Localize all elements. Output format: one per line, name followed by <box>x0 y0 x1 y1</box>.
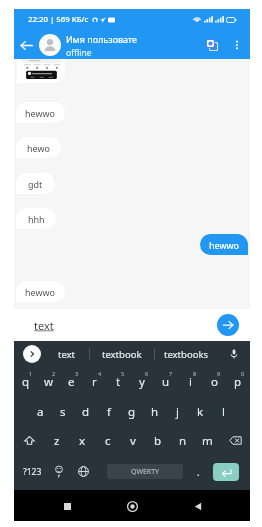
staticText: z <box>54 433 60 449</box>
button[interactable]: . <box>183 455 213 488</box>
staticText: ?123 <box>23 466 42 478</box>
button[interactable]: i <box>178 367 202 397</box>
button[interactable]: y <box>130 367 154 397</box>
button[interactable]: hewwo <box>16 281 65 302</box>
staticText: textbooks <box>164 348 209 361</box>
staticText: 2 <box>52 370 56 377</box>
button[interactable]: t <box>106 367 130 397</box>
button[interactable]: Back <box>185 493 211 519</box>
button[interactable]: Expand toolbar <box>23 345 41 363</box>
button[interactable]: x <box>70 426 95 455</box>
button[interactable]: q <box>14 367 37 397</box>
button[interactable]: hewo <box>16 137 61 158</box>
staticText: l <box>222 404 225 420</box>
button[interactable]: Translate <box>201 34 223 56</box>
staticText: text <box>34 318 54 333</box>
button[interactable]: r <box>83 367 106 397</box>
button[interactable]: o <box>202 367 226 397</box>
staticText: k <box>197 404 204 420</box>
staticText: a <box>37 404 44 420</box>
button[interactable]: u <box>154 367 178 397</box>
button[interactable]: Backspace <box>220 426 250 455</box>
staticText: f <box>107 404 111 420</box>
button[interactable]: textbook <box>90 341 154 367</box>
button[interactable]: hewwo <box>16 102 65 123</box>
button[interactable]: l <box>212 397 235 426</box>
staticText: v <box>130 433 136 449</box>
staticText: hhh <box>28 213 45 225</box>
button[interactable]: Emoji <box>50 455 68 488</box>
staticText: q <box>22 374 30 390</box>
button[interactable]: p <box>226 367 250 397</box>
staticText: 7 <box>169 370 173 377</box>
button[interactable]: j <box>166 397 189 426</box>
button[interactable]: f <box>97 397 120 426</box>
button[interactable]: Back <box>16 35 36 55</box>
staticText: m <box>202 433 213 449</box>
button[interactable]: z <box>44 426 70 455</box>
button[interactable]: gdt <box>16 173 55 194</box>
button[interactable]: hewwo <box>200 234 248 255</box>
staticText: textbook <box>102 348 142 361</box>
staticText: y <box>139 374 145 390</box>
button[interactable]: ?123 <box>14 455 50 488</box>
staticText: e <box>68 374 75 390</box>
button[interactable]: textbooks <box>155 341 218 367</box>
staticText: hewwo <box>209 239 240 251</box>
staticText: j <box>176 404 179 420</box>
button[interactable]: Change language <box>68 455 98 488</box>
button[interactable]: s <box>51 397 74 426</box>
button[interactable]: Enter <box>213 463 239 481</box>
button[interactable]: n <box>170 426 195 455</box>
staticText: p <box>234 374 242 390</box>
staticText: offline <box>66 47 92 59</box>
staticText: text <box>58 348 76 361</box>
staticText: 8 <box>193 370 197 377</box>
staticText: r <box>92 374 97 390</box>
button[interactable]: text <box>44 341 89 367</box>
staticText: 6 <box>145 370 149 377</box>
staticText: h <box>151 404 159 420</box>
staticText: d <box>82 404 90 420</box>
staticText: g <box>128 404 136 420</box>
staticText: 5 <box>121 370 125 377</box>
button[interactable]: More options <box>227 35 247 55</box>
staticText: 3 <box>75 370 79 377</box>
button[interactable]: Send <box>217 314 239 336</box>
staticText: gdt <box>28 178 43 190</box>
staticText: 22:20 | 569 КБ/с <box>28 14 89 25</box>
button[interactable]: Voice input <box>218 341 250 367</box>
staticText: QWERTY <box>131 467 160 477</box>
button[interactable]: v <box>120 426 145 455</box>
staticText: 1 <box>29 370 33 377</box>
button[interactable]: a <box>29 397 51 426</box>
button[interactable] <box>17 59 65 83</box>
staticText: hewwo <box>25 107 56 119</box>
staticText: s <box>60 404 66 420</box>
button[interactable]: Recents <box>54 493 80 519</box>
button[interactable]: e <box>60 367 83 397</box>
button[interactable]: k <box>189 397 212 426</box>
button[interactable]: d <box>74 397 97 426</box>
button[interactable]: hhh <box>16 208 56 229</box>
button[interactable]: Shift <box>14 426 44 455</box>
staticText: n <box>179 433 187 449</box>
button[interactable]: b <box>145 426 170 455</box>
button[interactable]: g <box>120 397 143 426</box>
staticText: c <box>105 433 111 449</box>
button[interactable]: m <box>195 426 220 455</box>
button[interactable]: Home <box>119 493 145 519</box>
staticText: x <box>79 433 86 449</box>
staticText: 0 <box>241 370 245 377</box>
staticText: . <box>197 465 200 479</box>
staticText: b <box>154 433 162 449</box>
button[interactable]: c <box>95 426 120 455</box>
staticText: hewwo <box>25 286 56 298</box>
staticText: i <box>189 374 192 390</box>
button[interactable]: QWERTY <box>107 464 183 479</box>
button[interactable]: w <box>37 367 60 397</box>
staticText: 4 <box>98 370 102 377</box>
staticText: t <box>116 374 121 390</box>
button[interactable]: h <box>143 397 166 426</box>
staticText: o <box>211 374 218 390</box>
